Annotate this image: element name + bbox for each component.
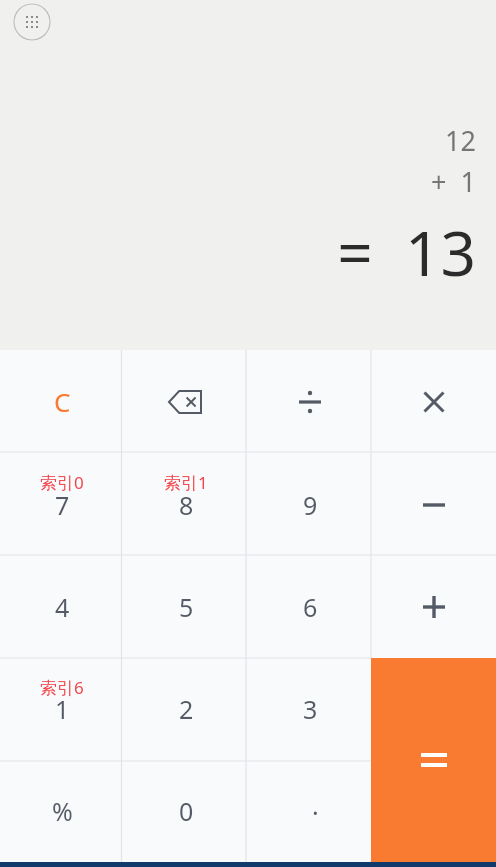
staticText: 索引1	[164, 471, 208, 494]
button[interactable]: 3	[248, 658, 372, 760]
button[interactable]: %	[0, 760, 124, 862]
button[interactable]: 5	[124, 556, 248, 658]
staticText: 0	[179, 794, 194, 828]
staticText: 索引0	[40, 471, 84, 494]
button[interactable]: 9	[248, 453, 372, 556]
button[interactable]: C	[0, 350, 124, 453]
staticText: 索引6	[40, 676, 84, 699]
button[interactable]: 2	[124, 658, 248, 760]
button[interactable]	[372, 556, 496, 658]
staticText: 7	[55, 488, 70, 522]
staticText: .	[312, 788, 319, 822]
button[interactable]: Apps	[13, 3, 51, 41]
button[interactable]: 6	[248, 556, 372, 658]
staticText: %	[52, 794, 73, 828]
button[interactable]	[372, 453, 496, 556]
button[interactable]: 4	[0, 556, 124, 658]
button[interactable]: .	[248, 760, 372, 862]
staticText: 6	[303, 590, 318, 624]
staticText: 8	[179, 488, 194, 522]
staticText: 4	[55, 590, 70, 624]
button[interactable]: 7	[0, 453, 124, 556]
staticText: 5	[179, 590, 194, 624]
staticText: C	[54, 384, 71, 419]
staticText: 1	[55, 692, 70, 726]
button[interactable]	[371, 658, 496, 862]
button[interactable]: Backspace	[124, 350, 248, 453]
button[interactable]	[372, 350, 496, 453]
staticText: 2	[179, 692, 194, 726]
staticText: 3	[303, 692, 318, 726]
staticText: + 1	[431, 163, 476, 200]
staticText: = 13	[337, 210, 476, 294]
button[interactable]: 0	[124, 760, 248, 862]
staticText: 12	[445, 122, 476, 159]
button[interactable]: 8	[124, 453, 248, 556]
staticText: 9	[303, 488, 318, 522]
button[interactable]	[248, 350, 372, 453]
button[interactable]: 1	[0, 658, 124, 760]
